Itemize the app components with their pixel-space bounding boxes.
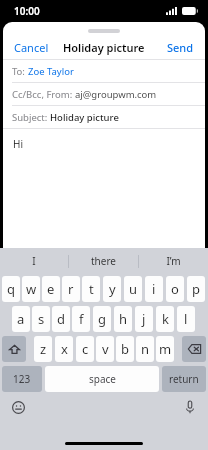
staticText: Send [167,40,194,55]
button[interactable]: Send [156,37,205,58]
staticText: k [162,310,169,328]
button[interactable]: u [124,276,142,302]
button[interactable]: r [62,276,80,302]
button[interactable]: t [82,276,100,302]
staticText: j [142,310,146,328]
staticText: p [192,280,200,298]
button[interactable]: l [177,306,195,332]
staticText: To: [12,65,28,78]
staticText: m [159,340,172,358]
button[interactable]: m [156,336,174,362]
button[interactable]: y [103,276,121,302]
button[interactable]: z [34,336,52,362]
button[interactable]: 123 [2,366,42,392]
button[interactable]: x [55,336,73,362]
staticText: a [17,310,25,328]
staticText: t [89,280,94,298]
staticText: Cancel [14,40,49,55]
staticText: I [32,254,36,268]
staticText: n [141,340,150,358]
button[interactable]: q [2,276,20,302]
button[interactable]: b [116,336,134,362]
button[interactable]: v [96,336,114,362]
button[interactable]: Emoji [8,397,28,417]
staticText: h [119,310,128,328]
staticText: I’m [166,254,181,268]
button[interactable]: Zoe Taylor [28,65,74,78]
staticText: return [169,372,199,386]
staticText: 123 [13,372,31,386]
button[interactable]: f [72,306,90,332]
staticText: u [129,280,138,298]
staticText: Subject: [12,111,50,124]
button[interactable]: j [135,306,153,332]
button[interactable]: a [12,306,30,332]
staticText: g [98,310,106,328]
button[interactable]: space [45,366,159,392]
staticText: Holiday picture [63,40,145,55]
button[interactable]: g [93,306,111,332]
button[interactable]: c [76,336,94,362]
button[interactable]: s [32,306,50,332]
button[interactable]: e [42,276,60,302]
staticText: z [40,340,47,358]
staticText: o [171,280,179,298]
staticText: e [47,280,55,298]
button[interactable]: d [52,306,70,332]
staticText: Hi [13,137,23,151]
staticText: Cc/Bcc, From: [12,88,75,101]
button[interactable]: h [114,306,132,332]
button[interactable]: I’m [139,248,208,274]
staticText: c [82,340,89,358]
button[interactable]: Backspace [182,336,206,362]
staticText: y [109,280,116,298]
staticText: 10:00 [14,4,40,18]
button[interactable]: Cancel [3,37,60,58]
button[interactable]: w [22,276,40,302]
button[interactable]: Dictation [180,397,200,417]
button[interactable]: To: [3,60,205,82]
staticText: x [61,340,68,358]
staticText: there [91,254,116,268]
button[interactable]: Shift [2,336,26,362]
staticText: Zoe Taylor [28,65,74,78]
button[interactable]: i [145,276,163,302]
staticText: l [184,310,188,328]
button[interactable]: there [69,248,138,274]
staticText: w [26,280,37,298]
staticText: q [7,280,15,298]
button[interactable]: k [156,306,174,332]
staticText: i [152,280,156,298]
staticText: s [38,310,45,328]
button[interactable]: o [166,276,184,302]
staticText: r [68,280,74,298]
staticText: space [89,372,116,386]
staticText: aj@groupwm.com [75,88,157,101]
button[interactable]: p [187,276,205,302]
staticText: d [57,310,65,328]
staticText: b [121,340,129,358]
staticText: f [79,310,84,328]
button[interactable]: return [162,366,206,392]
button[interactable]: n [136,336,154,362]
button[interactable]: I [0,248,68,274]
button[interactable]: Hi [3,129,205,248]
staticText: v [102,340,109,358]
staticText: Holiday picture [50,111,119,124]
button[interactable]: Subject: [3,106,205,128]
button[interactable]: Cc/Bcc, From: [3,83,205,105]
